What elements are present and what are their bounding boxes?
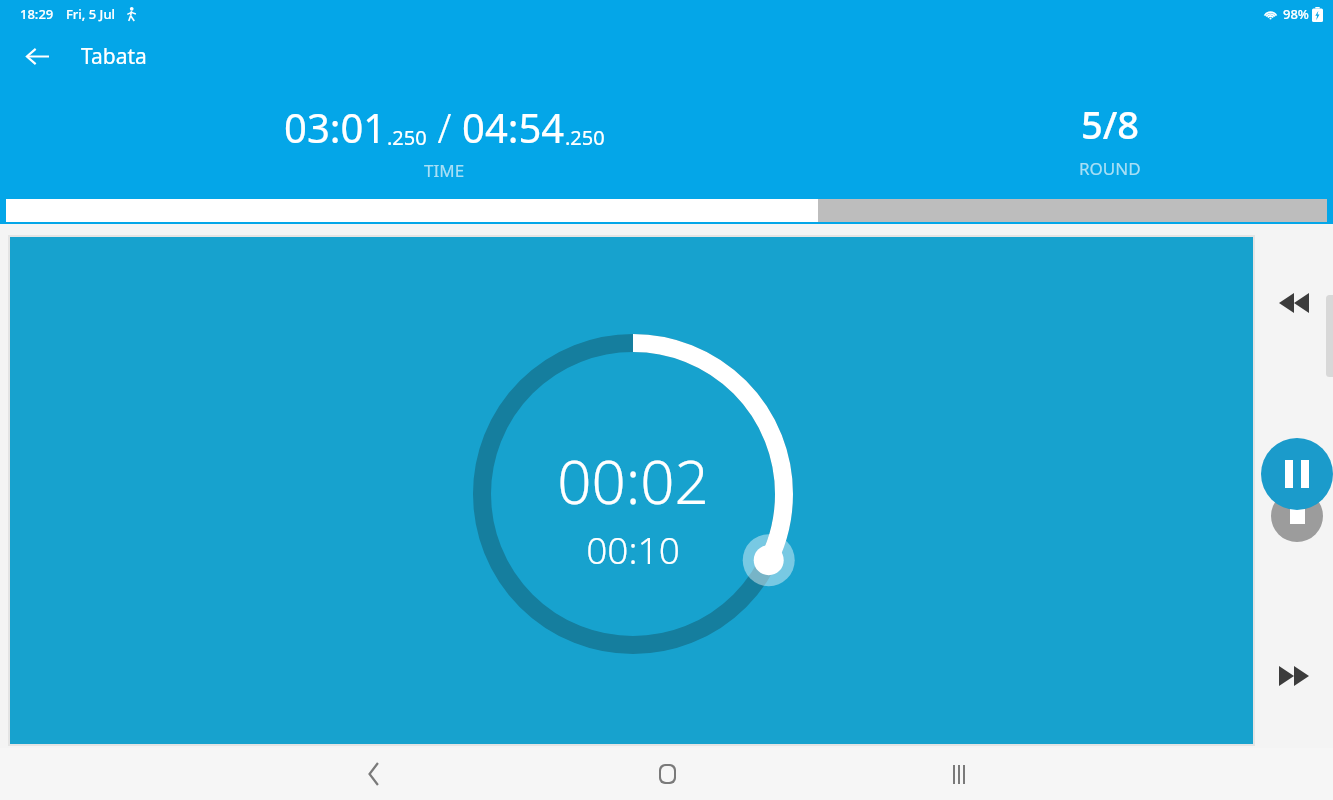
staticText: 98% [1283,5,1309,23]
staticText: Fri, 5 Jul [66,5,116,23]
staticText: 03:01 [284,100,387,154]
button[interactable]: Pause [1261,438,1333,510]
staticText: 04:54 [462,100,565,154]
button[interactable]: Recent apps [929,748,989,800]
button[interactable]: 00:02 [10,237,1253,744]
button[interactable]: Next [1266,648,1322,704]
button[interactable]: Back [344,748,404,800]
staticText: Tabata [81,42,147,71]
button[interactable]: Stop [1271,490,1323,542]
staticText: 5/8 [1081,98,1140,150]
staticText: TIME [424,159,465,182]
button[interactable]: Back [14,33,60,79]
button[interactable]: Home [637,748,697,800]
staticText: 00:10 [586,524,680,574]
staticText: 00:02 [557,440,709,522]
staticText: / [427,100,462,154]
button[interactable]: Previous [1266,275,1322,331]
staticText: 18:29 [20,5,54,23]
staticText: .250 [565,124,605,151]
staticText: ROUND [1079,157,1141,180]
staticText: .250 [387,124,427,151]
